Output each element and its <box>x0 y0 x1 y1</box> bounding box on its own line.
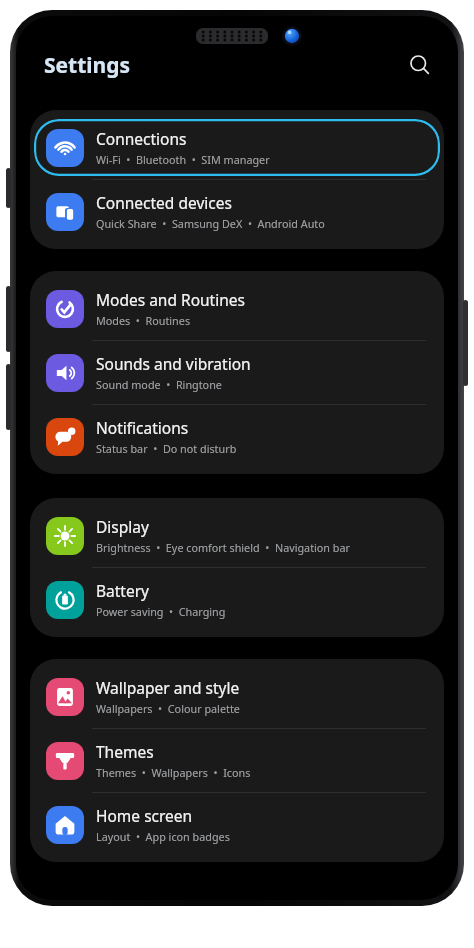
staticText: Wallpaper and style <box>96 677 240 698</box>
staticText: Quick Share • Samsung DeX • Android Auto <box>96 216 325 231</box>
button[interactable]: Notifications <box>34 408 440 465</box>
staticText: Settings <box>44 51 131 80</box>
button[interactable]: Display <box>34 507 440 564</box>
staticText: Home screen <box>96 805 193 826</box>
staticText: Wallpapers • Colour palette <box>96 701 240 716</box>
staticText: Brightness • Eye comfort shield • Naviga… <box>96 540 351 555</box>
staticText: Sound mode • Ringtone <box>96 377 222 392</box>
staticText: Power saving • Charging <box>96 604 226 619</box>
button[interactable]: Home screen <box>34 796 440 853</box>
button[interactable]: Themes <box>34 732 440 789</box>
staticText: Status bar • Do not disturb <box>96 441 237 456</box>
button[interactable]: Sounds and vibration <box>34 344 440 401</box>
staticText: Modes • Routines <box>96 313 191 328</box>
staticText: Themes • Wallpapers • Icons <box>96 765 251 780</box>
button[interactable]: Connected devices <box>34 183 440 240</box>
staticText: Display <box>96 516 149 537</box>
staticText: Battery <box>96 580 150 601</box>
staticText: Wi-Fi • Bluetooth • SIM manager <box>96 152 270 167</box>
staticText: Modes and Routines <box>96 289 245 310</box>
staticText: Connections <box>96 128 187 149</box>
staticText: Themes <box>96 741 154 762</box>
staticText: Sounds and vibration <box>96 353 251 374</box>
button[interactable]: Connections <box>34 119 440 176</box>
staticText: Notifications <box>96 417 189 438</box>
button[interactable]: Battery <box>34 571 440 628</box>
button[interactable]: Wallpaper and style <box>34 668 440 725</box>
button[interactable]: Modes and Routines <box>34 280 440 337</box>
staticText: Layout • App icon badges <box>96 829 230 844</box>
staticText: Connected devices <box>96 192 232 213</box>
button[interactable]: Search <box>398 43 442 87</box>
